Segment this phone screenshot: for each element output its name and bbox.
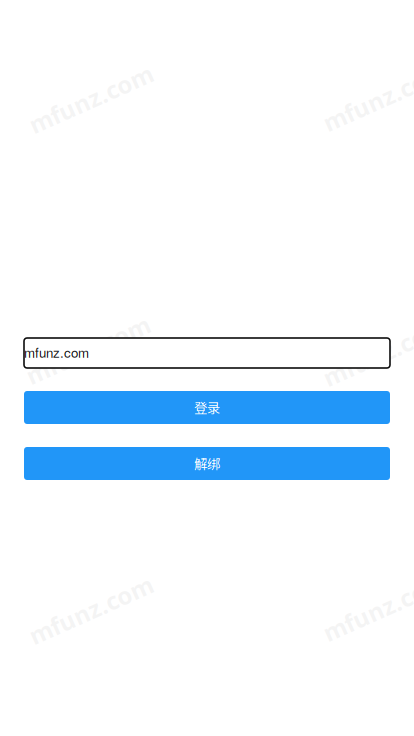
staticText: mfunz.com: [24, 594, 157, 626]
button[interactable]: mfunz.com: [24, 338, 390, 368]
staticText: mfunz.com: [21, 334, 154, 366]
staticText: mfunz.com: [24, 342, 89, 362]
button[interactable]: 解绑: [24, 447, 390, 480]
staticText: mfunz.com: [318, 336, 414, 368]
button[interactable]: 登录: [24, 391, 390, 424]
staticText: 登录: [194, 398, 220, 417]
staticText: mfunz.com: [318, 591, 414, 623]
staticText: 解绑: [194, 454, 220, 473]
staticText: mfunz.com: [318, 81, 414, 113]
staticText: mfunz.com: [24, 83, 157, 115]
